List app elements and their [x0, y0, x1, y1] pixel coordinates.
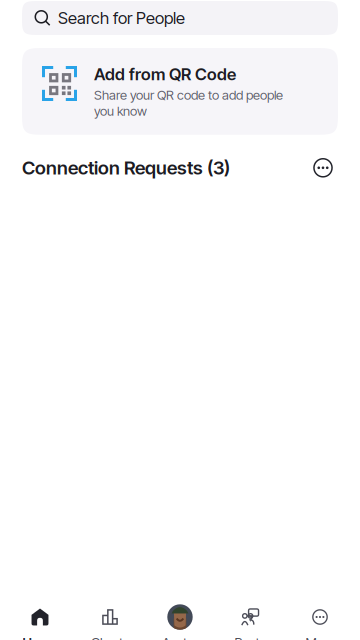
button[interactable]: More [285, 604, 355, 640]
button[interactable]: Search for People [22, 1, 338, 35]
staticText: Share your QR code to add people you kno… [94, 87, 283, 119]
staticText: Home [22, 634, 57, 640]
button[interactable]: Posts [215, 604, 285, 640]
staticText: Avatar [162, 634, 198, 640]
button[interactable]: Home [5, 604, 75, 640]
staticText: Connection Requests (3) [22, 156, 230, 179]
button[interactable]: Add from QR Code [22, 48, 338, 135]
button[interactable]: More options [309, 155, 337, 181]
button[interactable]: Charts [75, 604, 145, 640]
staticText: Search for People [58, 8, 185, 28]
button[interactable]: Avatar [145, 604, 215, 640]
staticText: Charts [91, 634, 129, 640]
staticText: Posts [234, 634, 265, 640]
staticText: More [305, 634, 334, 640]
staticText: Add from QR Code [94, 64, 236, 84]
